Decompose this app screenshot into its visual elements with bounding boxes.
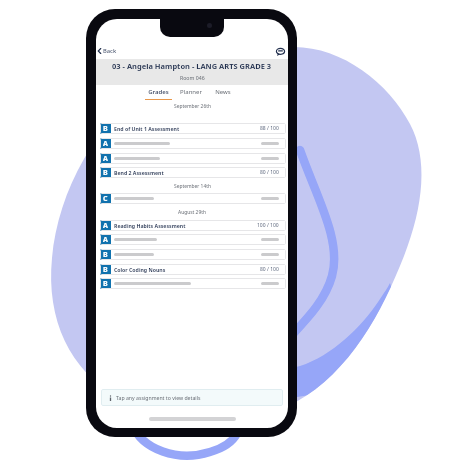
staticText: A <box>103 221 108 231</box>
button[interactable]: Tap any assignment to view details <box>101 389 283 406</box>
button[interactable]: A <box>100 220 286 231</box>
staticText: Color Coding Nouns <box>114 266 166 273</box>
staticText: Back <box>103 47 117 55</box>
button[interactable]: B <box>100 264 286 275</box>
staticText: Planner <box>180 88 202 96</box>
staticText: C <box>103 194 108 204</box>
staticText: End of Unit 1 Assessment <box>114 125 180 132</box>
staticText: Reading Habits Assessment <box>114 222 186 229</box>
button[interactable]: Grades <box>143 85 173 100</box>
button[interactable]: News <box>208 85 238 100</box>
button[interactable]: C <box>100 193 286 204</box>
staticText: 100 / 100 <box>257 222 279 229</box>
button[interactable]: A <box>100 153 286 164</box>
staticText: A <box>103 235 108 245</box>
button[interactable]: Messages <box>273 45 287 59</box>
staticText: Bend 2 Assessment <box>114 169 164 176</box>
staticText: B <box>103 168 108 178</box>
staticText: A <box>103 139 108 149</box>
button[interactable]: Planner <box>176 85 206 100</box>
staticText: Tap any assignment to view details <box>116 394 201 401</box>
staticText: B <box>103 250 108 260</box>
staticText: Grades <box>148 88 169 96</box>
button[interactable]: A <box>100 234 286 245</box>
staticText: August 29th <box>178 209 206 216</box>
button[interactable]: A <box>100 138 286 149</box>
button[interactable]: B <box>100 123 286 134</box>
staticText: September 14th <box>174 183 211 190</box>
staticText: B <box>103 265 108 275</box>
staticText: 80 / 100 <box>260 266 279 273</box>
button[interactable]: B <box>100 249 286 260</box>
button[interactable]: B <box>100 167 286 178</box>
staticText: September 26th <box>174 103 211 110</box>
staticText: B <box>103 279 108 289</box>
staticText: B <box>103 124 108 134</box>
staticText: News <box>215 88 231 96</box>
staticText: 88 / 100 <box>260 125 279 132</box>
staticText: 80 / 100 <box>260 169 279 176</box>
staticText: A <box>103 154 108 164</box>
staticText: 03 - Angela Hampton - LANG ARTS GRADE 3 <box>112 61 272 71</box>
button[interactable]: B <box>100 278 286 289</box>
button[interactable]: Back <box>96 45 123 57</box>
staticText: Room 046 <box>180 74 205 81</box>
